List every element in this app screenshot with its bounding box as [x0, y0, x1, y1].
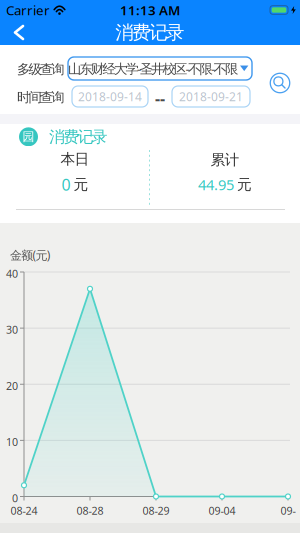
staticText: 累计: [211, 151, 239, 169]
staticText: 园: [22, 129, 34, 144]
staticText: 0: [61, 174, 70, 195]
staticText: 30: [6, 323, 18, 337]
staticText: 元: [73, 176, 88, 194]
staticText: 44.95: [198, 175, 234, 194]
staticText: 时间查询: [17, 89, 64, 105]
staticText: 0: [12, 491, 18, 505]
button[interactable]: Back: [0, 21, 24, 44]
staticText: 09-: [280, 503, 295, 518]
staticText: --: [155, 87, 165, 109]
staticText: 10: [6, 435, 18, 449]
staticText: 08-29: [142, 503, 169, 518]
staticText: 11:13 AM: [120, 1, 180, 19]
staticText: 元: [237, 176, 252, 194]
staticText: Carrier: [6, 1, 50, 19]
staticText: 08-28: [76, 503, 103, 518]
staticText: 40: [6, 266, 18, 281]
staticText: 消费记录: [49, 127, 108, 147]
button[interactable]: 2018-09-14: [72, 86, 148, 107]
staticText: 2018-09-21: [179, 88, 243, 104]
staticText: 09-04: [208, 503, 235, 518]
staticText: 20: [6, 379, 18, 393]
staticText: 08-24: [10, 503, 37, 518]
staticText: 2018-09-14: [78, 88, 142, 104]
button[interactable]: Search: [269, 72, 291, 94]
staticText: 山东财经大学-圣井校区-不限-不限: [68, 60, 238, 77]
button[interactable]: 山东财经大学-圣井校区-不限-不限: [68, 57, 252, 80]
staticText: 多级查询: [17, 61, 64, 77]
staticText: 本日: [61, 150, 89, 168]
button[interactable]: 2018-09-21: [172, 86, 250, 107]
staticText: 金额(元): [10, 247, 51, 263]
staticText: 消费记录: [115, 21, 185, 44]
